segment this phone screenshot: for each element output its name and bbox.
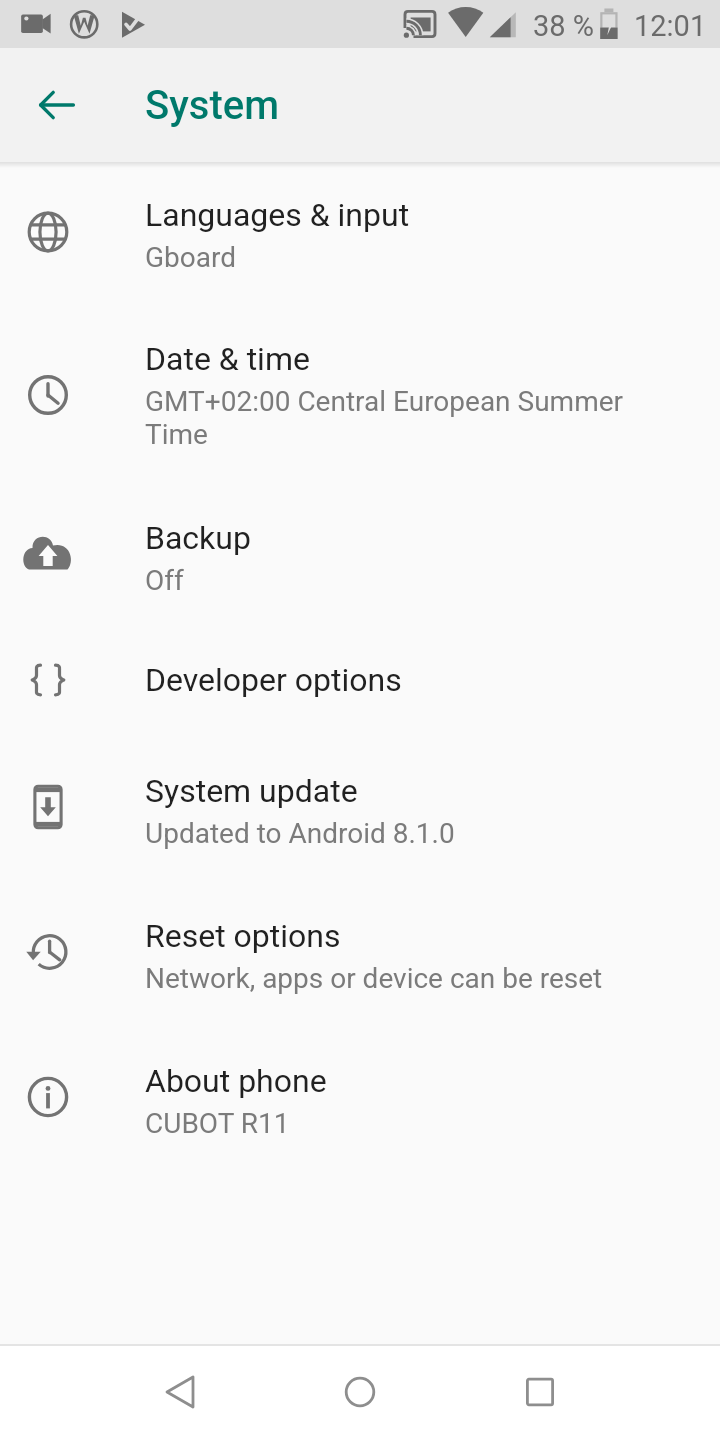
staticText: Updated to Android 8.1.0 — [145, 817, 455, 850]
button[interactable]: Developer options — [0, 626, 720, 734]
staticText: System update — [145, 772, 358, 810]
button[interactable]: Back — [132, 1344, 228, 1440]
button[interactable]: Languages & input — [0, 160, 720, 304]
staticText: Backup — [145, 519, 251, 557]
staticText: GMT+02:00 Central European Summer Time — [145, 385, 624, 451]
button[interactable]: System update — [0, 735, 720, 879]
staticText: CUBOT R11 — [145, 1107, 290, 1140]
button[interactable]: Navigate up — [0, 48, 114, 162]
staticText: About phone — [145, 1062, 327, 1100]
button[interactable]: Recent apps — [492, 1344, 588, 1440]
staticText: Off — [145, 564, 184, 597]
button[interactable]: Backup — [0, 482, 720, 626]
staticText: Languages & input — [145, 196, 410, 234]
staticText: Gboard — [145, 241, 237, 274]
staticText: Network, apps or device can be reset — [145, 962, 603, 995]
button[interactable]: About phone — [0, 1025, 720, 1169]
staticText: Reset options — [145, 917, 341, 955]
staticText: Developer options — [145, 661, 402, 699]
staticText: System — [145, 82, 279, 129]
button[interactable]: Reset options — [0, 880, 720, 1024]
staticText: Date & time — [145, 340, 310, 378]
button[interactable]: Home — [312, 1344, 408, 1440]
staticText: 12:01 — [634, 9, 707, 43]
button[interactable]: Date & time — [0, 304, 720, 485]
staticText: 38 % — [533, 9, 595, 43]
